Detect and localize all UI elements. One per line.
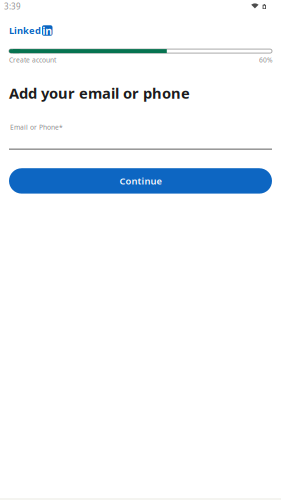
staticText: Email or Phone* <box>10 123 63 132</box>
staticText: Continue <box>119 175 161 187</box>
staticText: Add your email or phone <box>9 83 190 103</box>
staticText: Create account <box>9 55 56 64</box>
button[interactable]: Continue <box>9 168 272 194</box>
staticText: 3:39 <box>4 1 21 12</box>
staticText: in <box>42 23 52 38</box>
staticText: 60% <box>259 55 273 64</box>
button[interactable]: Email or Phone* <box>9 123 272 150</box>
staticText: Linked <box>9 24 41 37</box>
